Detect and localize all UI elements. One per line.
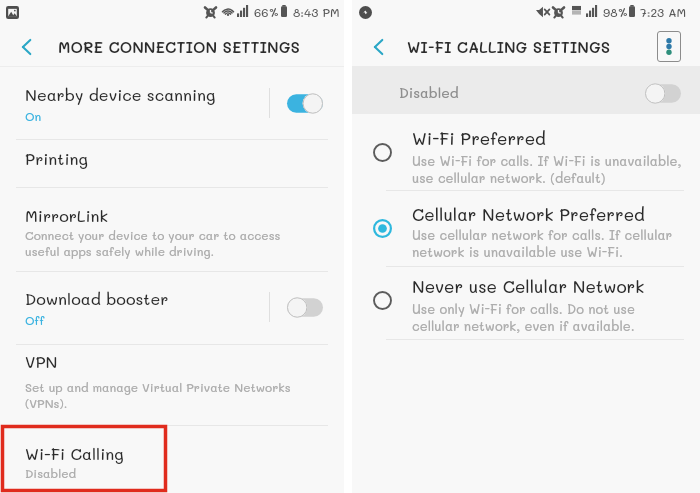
staticText: Wi-Fi Calling bbox=[25, 443, 124, 464]
button[interactable]: Nearby device scanning bbox=[287, 93, 323, 114]
staticText: 66% bbox=[254, 4, 280, 20]
button[interactable] bbox=[352, 114, 700, 190]
staticText: Connect your device to your car to acces… bbox=[25, 227, 281, 259]
staticText: Printing bbox=[25, 148, 88, 169]
staticText: Nearby device scanning bbox=[25, 84, 216, 105]
staticText: 7:23 AM bbox=[640, 4, 687, 20]
staticText: WI-FI CALLING SETTINGS bbox=[407, 37, 611, 57]
staticText: MirrorLink bbox=[25, 205, 109, 226]
staticText: Off bbox=[25, 312, 45, 328]
staticText: Use Wi-Fi for calls. If Wi-Fi is unavail… bbox=[412, 152, 682, 186]
button[interactable] bbox=[0, 425, 344, 493]
staticText: Use cellular network for calls. If cellu… bbox=[412, 226, 673, 260]
staticText: Set up and manage Virtual Private Networ… bbox=[25, 379, 291, 411]
button[interactable] bbox=[0, 67, 344, 139]
staticText: Disabled bbox=[25, 465, 77, 481]
button[interactable] bbox=[352, 190, 700, 266]
button[interactable]: Navigate up bbox=[352, 25, 700, 67]
staticText: Disabled bbox=[399, 83, 459, 101]
button[interactable] bbox=[0, 271, 344, 344]
staticText: MORE CONNECTION SETTINGS bbox=[58, 37, 300, 57]
staticText: Cellular Network Preferred bbox=[412, 203, 645, 225]
staticText: Download booster bbox=[25, 288, 169, 309]
staticText: VPN bbox=[25, 351, 58, 372]
staticText: Use only Wi-Fi for calls. Do not use cel… bbox=[412, 300, 635, 334]
staticText: Never use Cellular Network bbox=[412, 275, 645, 297]
staticText: 98% bbox=[603, 4, 629, 20]
button[interactable] bbox=[0, 344, 344, 425]
staticText: 8:43 PM bbox=[293, 4, 340, 20]
button[interactable] bbox=[352, 66, 700, 114]
staticText: On bbox=[25, 108, 42, 124]
button[interactable] bbox=[0, 139, 344, 187]
button[interactable]: More options bbox=[657, 31, 681, 62]
button[interactable]: Download booster bbox=[287, 297, 323, 318]
button[interactable]: Navigate up bbox=[0, 25, 344, 67]
staticText: Wi-Fi Preferred bbox=[412, 127, 546, 149]
button[interactable] bbox=[352, 266, 700, 339]
button[interactable]: Enable Wi-Fi calling bbox=[645, 83, 681, 104]
button[interactable] bbox=[0, 187, 344, 271]
